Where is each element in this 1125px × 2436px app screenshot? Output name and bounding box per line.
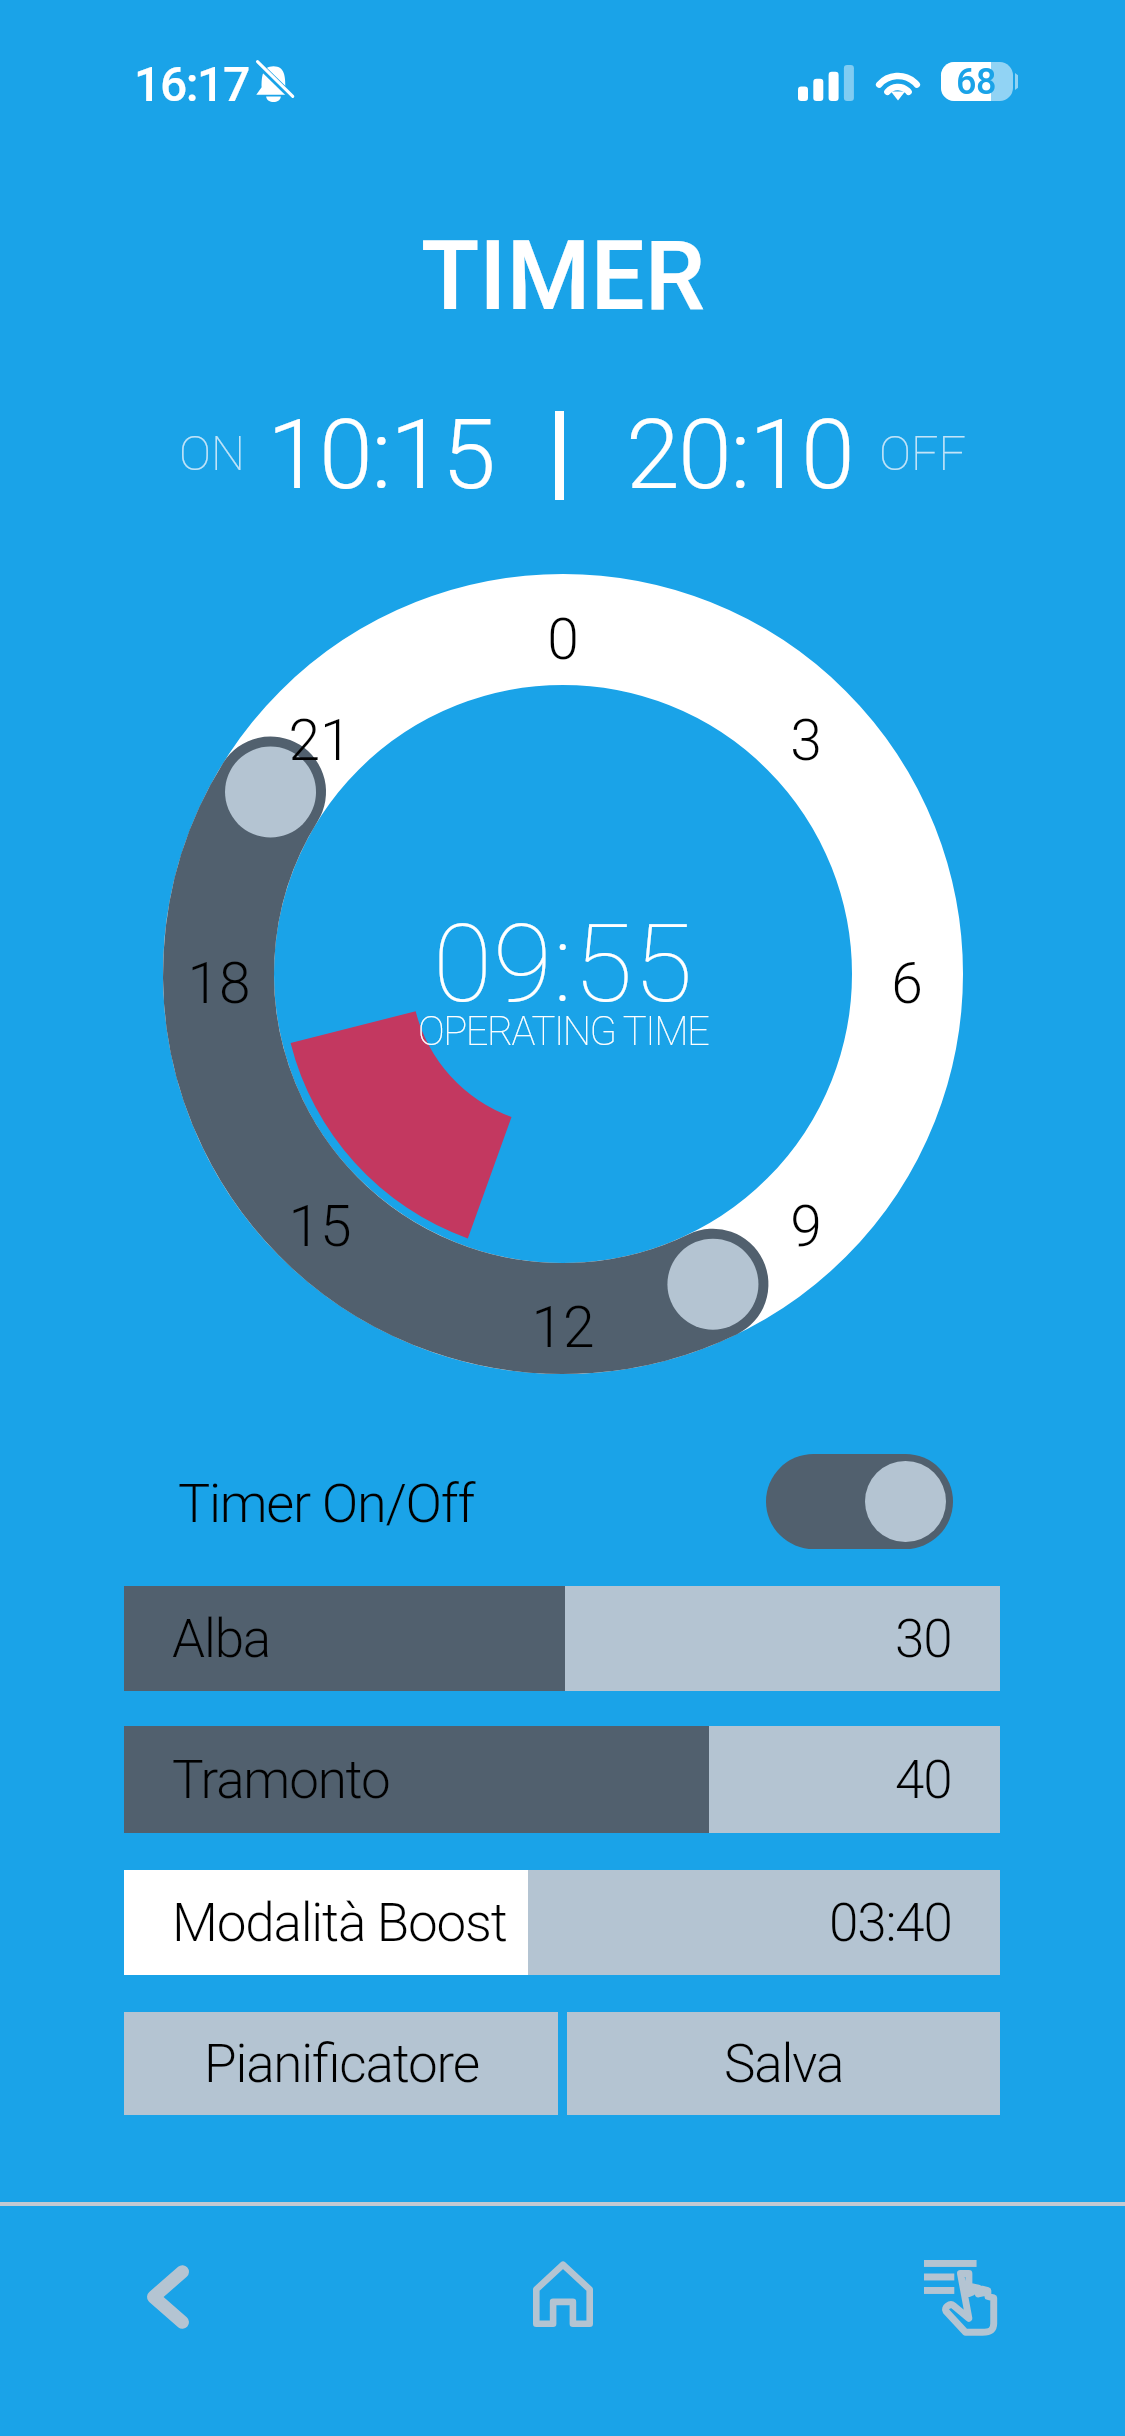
- button[interactable]: Tramonto: [124, 1726, 1000, 1833]
- button[interactable]: Modalità Boost: [124, 1870, 1000, 1975]
- staticText: TIMER: [421, 220, 705, 333]
- staticText: 12: [531, 1294, 595, 1361]
- staticText: 40: [895, 1749, 952, 1811]
- staticText: 18: [187, 950, 251, 1017]
- staticText: 15: [288, 1193, 352, 1260]
- button[interactable]: Timer schedule dial, on 10:15, off 20:10: [163, 574, 963, 1374]
- staticText: 68: [956, 61, 996, 100]
- staticText: OPERATING TIME: [418, 1008, 709, 1055]
- staticText: Tramonto: [172, 1749, 390, 1811]
- button[interactable]: Back: [40, 2226, 296, 2362]
- staticText: Alba: [172, 1608, 271, 1670]
- button[interactable]: Pianificatore: [124, 2012, 558, 2115]
- staticText: ON: [179, 425, 245, 481]
- staticText: 9: [790, 1193, 822, 1260]
- button[interactable]: Salva: [567, 2012, 1000, 2115]
- button[interactable]: Timer On/Off toggle: [766, 1454, 953, 1549]
- staticText: 21: [288, 707, 352, 774]
- staticText: 20:10: [626, 398, 854, 512]
- staticText: 03:40: [829, 1892, 952, 1954]
- staticText: Timer On/Off: [178, 1472, 474, 1535]
- staticText: 09:55: [433, 901, 694, 1028]
- staticText: 6: [891, 950, 923, 1017]
- staticText: 3: [790, 707, 822, 774]
- staticText: OFF: [879, 425, 966, 481]
- staticText: 10:15: [267, 398, 495, 512]
- staticText: 30: [895, 1608, 952, 1670]
- button[interactable]: Home: [435, 2228, 691, 2360]
- button[interactable]: Scheduler: [828, 2202, 1084, 2432]
- button[interactable]: Alba: [124, 1586, 1000, 1691]
- staticText: 0: [547, 606, 579, 673]
- button[interactable]: Timer On/Off: [124, 1450, 953, 1553]
- staticText: 16:17: [134, 56, 249, 112]
- staticText: Pianificatore: [204, 2033, 479, 2095]
- staticText: Modalità Boost: [172, 1892, 507, 1954]
- staticText: Salva: [724, 2033, 844, 2095]
